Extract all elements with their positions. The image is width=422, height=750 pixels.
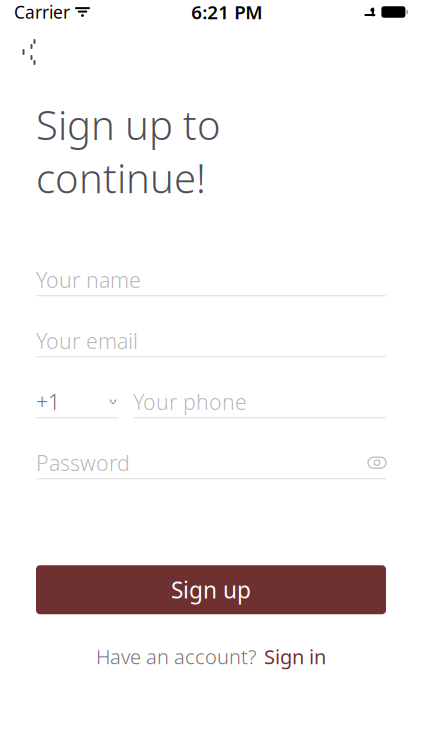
staticText: 6:21 PM xyxy=(191,0,262,24)
staticText: Sign up xyxy=(171,575,251,605)
staticText: Carrier xyxy=(14,0,70,23)
staticText: Your phone xyxy=(133,388,247,416)
button[interactable]: Your email xyxy=(36,325,386,357)
button[interactable]: Your phone xyxy=(133,386,386,418)
button[interactable]: Back xyxy=(7,32,51,72)
button[interactable]: Password xyxy=(36,447,386,479)
button[interactable]: Your name xyxy=(36,264,386,296)
button[interactable]: Sign up xyxy=(36,565,386,614)
staticText: Sign in xyxy=(264,643,326,670)
staticText: Password xyxy=(36,449,130,477)
staticText: Your name xyxy=(36,266,141,294)
button[interactable]: Sign in xyxy=(256,638,326,675)
button[interactable]: +1 xyxy=(36,386,118,418)
staticText: Your email xyxy=(36,327,138,355)
staticText: Sign up to continue! xyxy=(36,98,221,204)
staticText: +1 xyxy=(36,388,60,416)
staticText: Have an account? xyxy=(96,643,256,670)
